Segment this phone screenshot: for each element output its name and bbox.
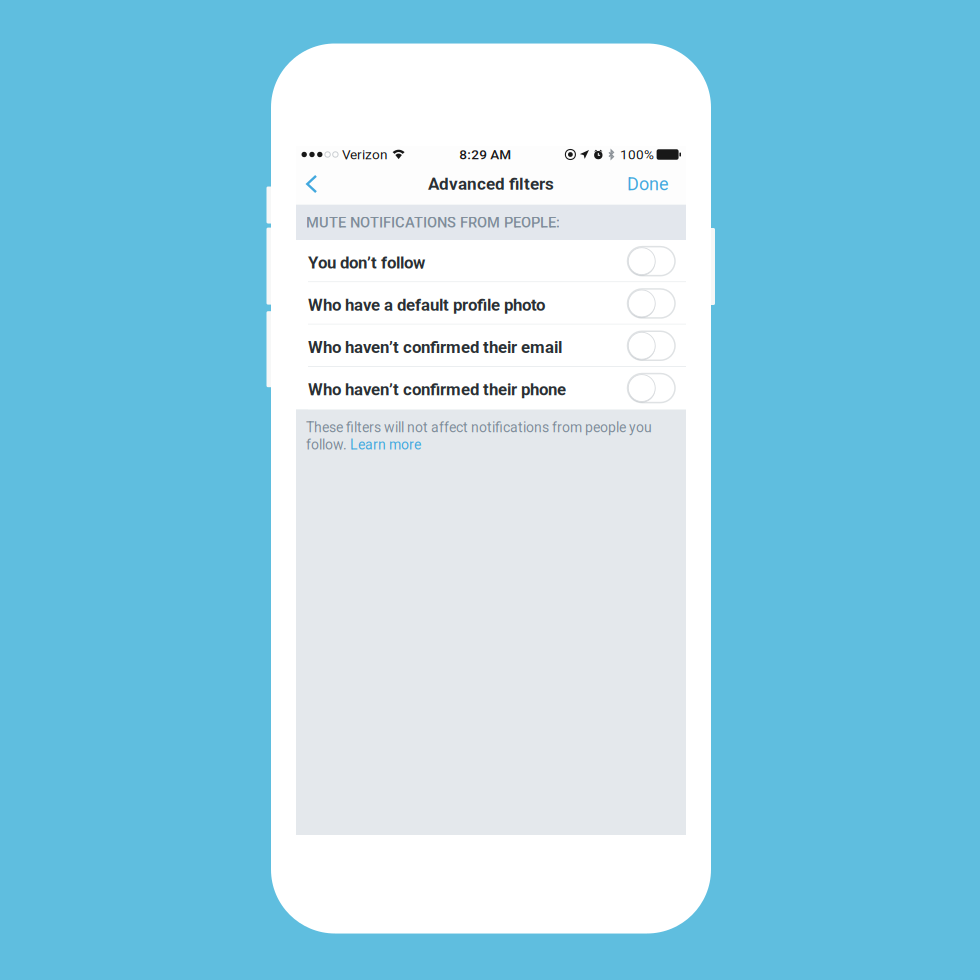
staticText: Who haven’t confirmed their phone — [308, 380, 566, 399]
staticText: Verizon — [342, 146, 388, 162]
staticText: 8:29 AM — [459, 146, 511, 162]
staticText: Who haven’t confirmed their email — [308, 337, 562, 357]
staticText: Who have a default profile photo — [308, 295, 545, 315]
button[interactable]: Who have a default profile photo — [296, 282, 686, 325]
button[interactable]: Done — [609, 161, 686, 207]
button[interactable]: Who haven’t confirmed their phone — [296, 367, 686, 409]
button[interactable]: You don’t follow — [296, 240, 686, 282]
staticText: You don’t follow — [308, 253, 425, 272]
button[interactable]: Who haven’t confirmed their email — [296, 325, 686, 367]
staticText: Learn more — [350, 437, 421, 453]
staticText: MUTE NOTIFICATIONS FROM PEOPLE: — [306, 214, 560, 231]
staticText: 100% — [620, 146, 654, 162]
staticText: Advanced filters — [428, 174, 554, 194]
button[interactable]: Back — [296, 164, 335, 204]
staticText: Done — [627, 173, 669, 195]
staticText: These filters will not affect notificati… — [306, 419, 652, 436]
button[interactable]: Learn more — [350, 437, 421, 453]
staticText: follow. — [306, 437, 347, 453]
